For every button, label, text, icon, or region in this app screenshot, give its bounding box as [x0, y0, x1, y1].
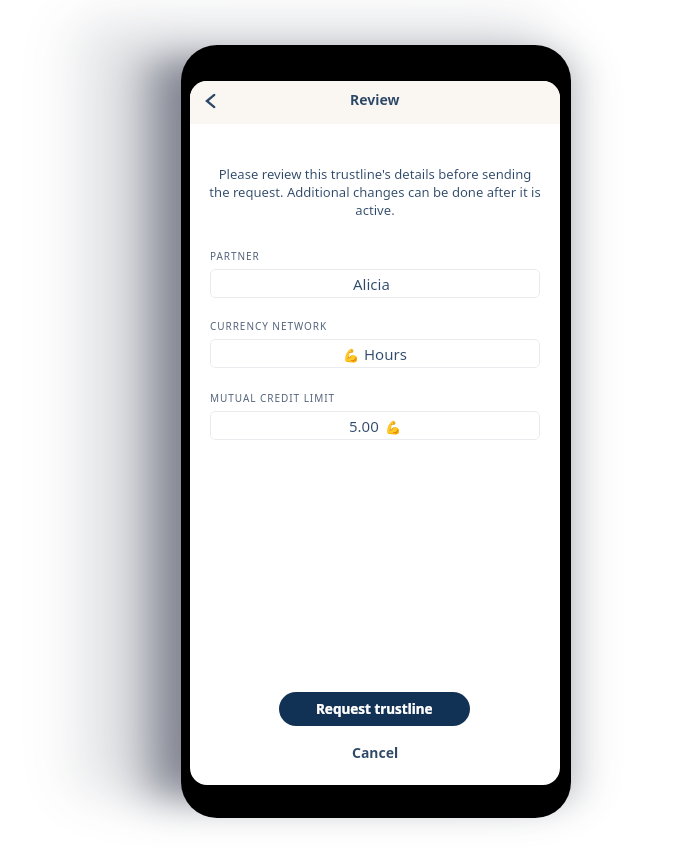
staticText: Alicia: [353, 274, 390, 294]
button[interactable]: 💪: [210, 339, 540, 368]
staticText: Please review this trustline's details b…: [208, 165, 542, 219]
staticText: Review: [350, 90, 400, 109]
staticText: Request trustline: [316, 700, 433, 718]
staticText: 💪: [385, 420, 402, 435]
staticText: 💪: [343, 348, 360, 363]
button[interactable]: Back: [193, 84, 227, 118]
staticText: Cancel: [352, 743, 399, 761]
staticText: MUTUAL CREDIT LIMIT: [210, 391, 336, 405]
button[interactable]: Request trustline: [279, 692, 470, 726]
staticText: 5.00: [349, 416, 379, 436]
button[interactable]: Cancel: [330, 737, 421, 767]
button[interactable]: 5.00: [210, 411, 540, 440]
staticText: CURRENCY NETWORK: [210, 319, 328, 333]
staticText: PARTNER: [210, 249, 260, 263]
staticText: Hours: [364, 344, 407, 364]
button[interactable]: Alicia: [210, 269, 540, 298]
